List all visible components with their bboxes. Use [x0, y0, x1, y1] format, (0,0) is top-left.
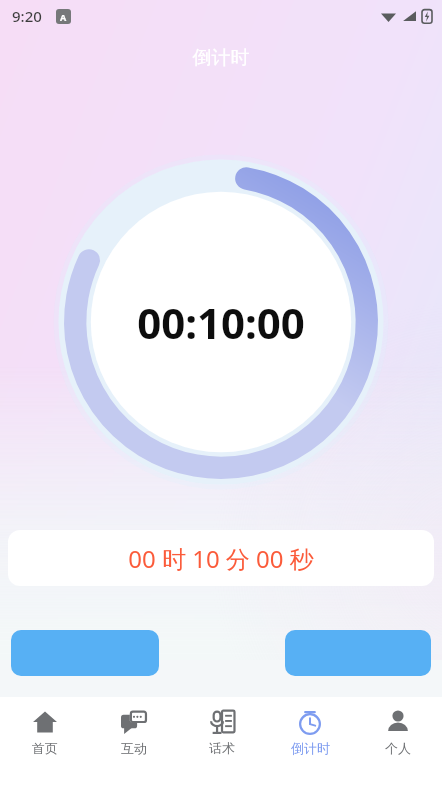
button[interactable]: [285, 630, 431, 676]
staticText: 倒计时: [0, 46, 442, 70]
staticText: 话术: [209, 740, 235, 756]
button[interactable]: 倒计时: [266, 697, 354, 787]
staticText: 个人: [385, 740, 411, 756]
button[interactable]: 个人: [354, 697, 442, 787]
staticText: 00 时 10 分 00 秒: [128, 542, 314, 575]
staticText: 倒计时: [291, 740, 330, 756]
button[interactable]: 首页: [0, 697, 89, 787]
button[interactable]: 00 时 10 分 00 秒: [8, 530, 434, 586]
staticText: 00:10:00: [137, 294, 305, 351]
staticText: A: [60, 11, 67, 23]
staticText: 首页: [32, 740, 58, 756]
staticText: 互动: [121, 740, 147, 756]
button[interactable]: 互动: [89, 697, 178, 787]
button[interactable]: 话术: [178, 697, 266, 787]
staticText: 9:20: [12, 6, 42, 26]
button[interactable]: [11, 630, 159, 676]
